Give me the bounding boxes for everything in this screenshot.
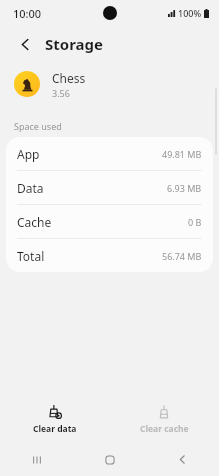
button[interactable]: Cache xyxy=(6,205,213,238)
button[interactable]: Data xyxy=(6,171,213,204)
staticText: 100% xyxy=(178,7,202,19)
staticText: Space used xyxy=(14,120,62,132)
staticText: 49.81 MB xyxy=(162,148,202,160)
staticText: Clear cache xyxy=(140,423,189,435)
button[interactable]: Back xyxy=(146,443,219,476)
staticText: Clear data xyxy=(33,423,77,435)
staticText: 10:00 xyxy=(13,6,42,21)
button[interactable]: Total xyxy=(6,239,213,272)
staticText: 0 B xyxy=(188,216,202,228)
button[interactable]: Clear cache xyxy=(109,400,219,443)
staticText: Chess xyxy=(52,70,86,86)
staticText: 3.56 xyxy=(52,87,70,99)
button[interactable]: App xyxy=(6,137,213,170)
button[interactable]: Clear data xyxy=(0,400,109,443)
staticText: Data xyxy=(17,180,44,196)
staticText: Storage xyxy=(45,34,103,54)
staticText: App xyxy=(17,146,40,162)
staticText: 6.93 MB xyxy=(167,182,202,194)
staticText: 56.74 MB xyxy=(162,250,202,262)
button[interactable]: Recent apps xyxy=(0,443,73,476)
button[interactable]: Home xyxy=(73,443,146,476)
button[interactable]: Back xyxy=(12,31,38,57)
staticText: Total xyxy=(17,248,45,264)
staticText: Cache xyxy=(17,214,52,230)
